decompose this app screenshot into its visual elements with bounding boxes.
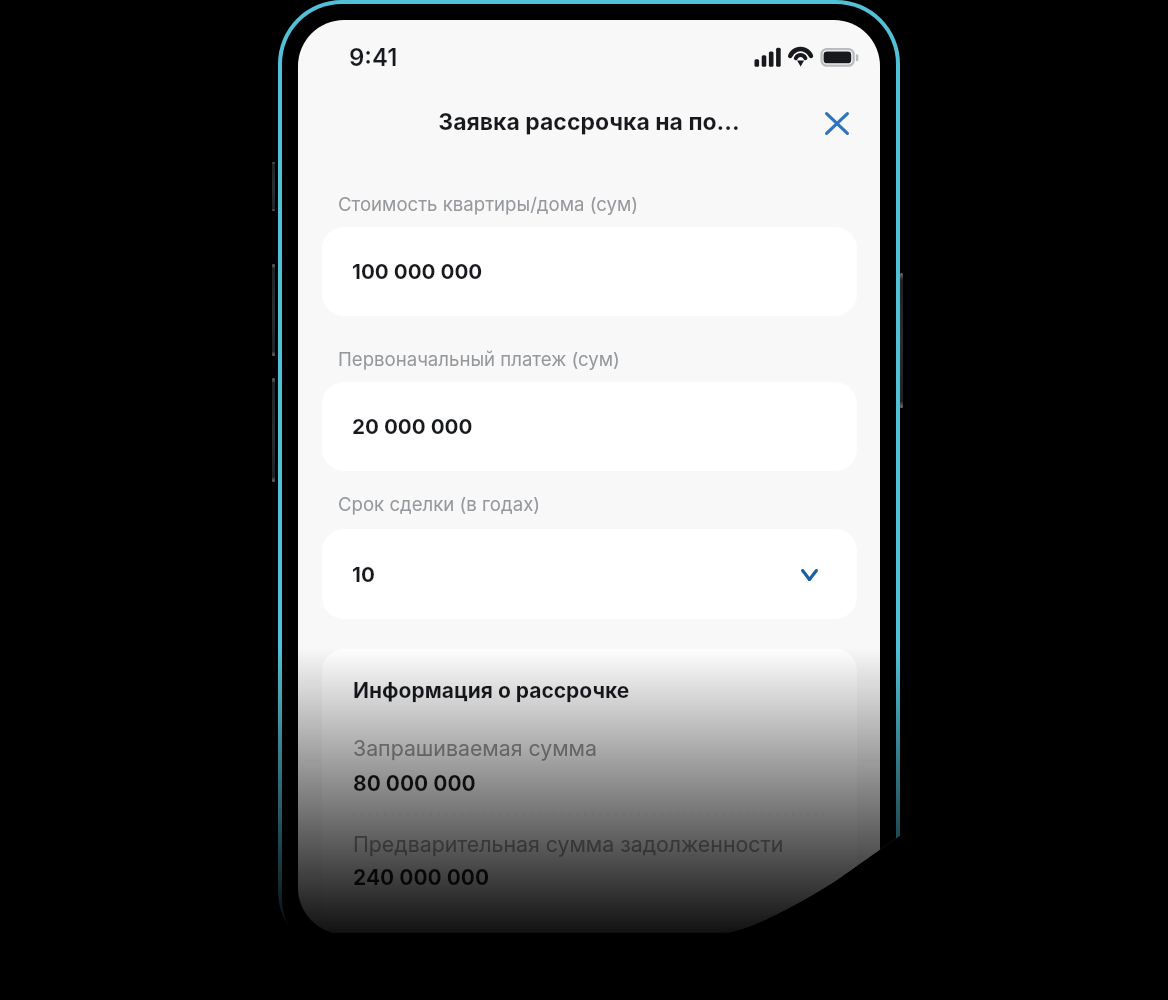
button[interactable]: 10 bbox=[322, 529, 857, 619]
staticText: 9:41 bbox=[349, 43, 398, 72]
staticText: 80 000 000 bbox=[353, 771, 476, 796]
button[interactable]: 100 000 000 bbox=[322, 227, 857, 316]
button[interactable]: Close bbox=[815, 103, 859, 143]
staticText: Информация о рассрочке bbox=[353, 678, 630, 703]
staticText: Стоимость квартиры/дома (сум) bbox=[338, 193, 639, 216]
staticText: Запрашиваемая сумма bbox=[353, 735, 597, 761]
staticText: Срок сделки (в годах) bbox=[338, 493, 541, 516]
staticText: Первоначальный платеж (сум) bbox=[338, 348, 620, 371]
staticText: 240 000 000 bbox=[353, 865, 490, 890]
staticText: 10 bbox=[352, 562, 375, 587]
button[interactable]: Информация о рассрочке bbox=[322, 649, 857, 934]
staticText: Заявка рассрочка на по... bbox=[438, 108, 740, 136]
staticText: 100 000 000 bbox=[352, 259, 483, 284]
staticText: 20 000 000 bbox=[352, 414, 473, 439]
staticText: Предварительная сумма задолженности bbox=[353, 831, 784, 857]
button[interactable]: 20 000 000 bbox=[322, 382, 857, 471]
